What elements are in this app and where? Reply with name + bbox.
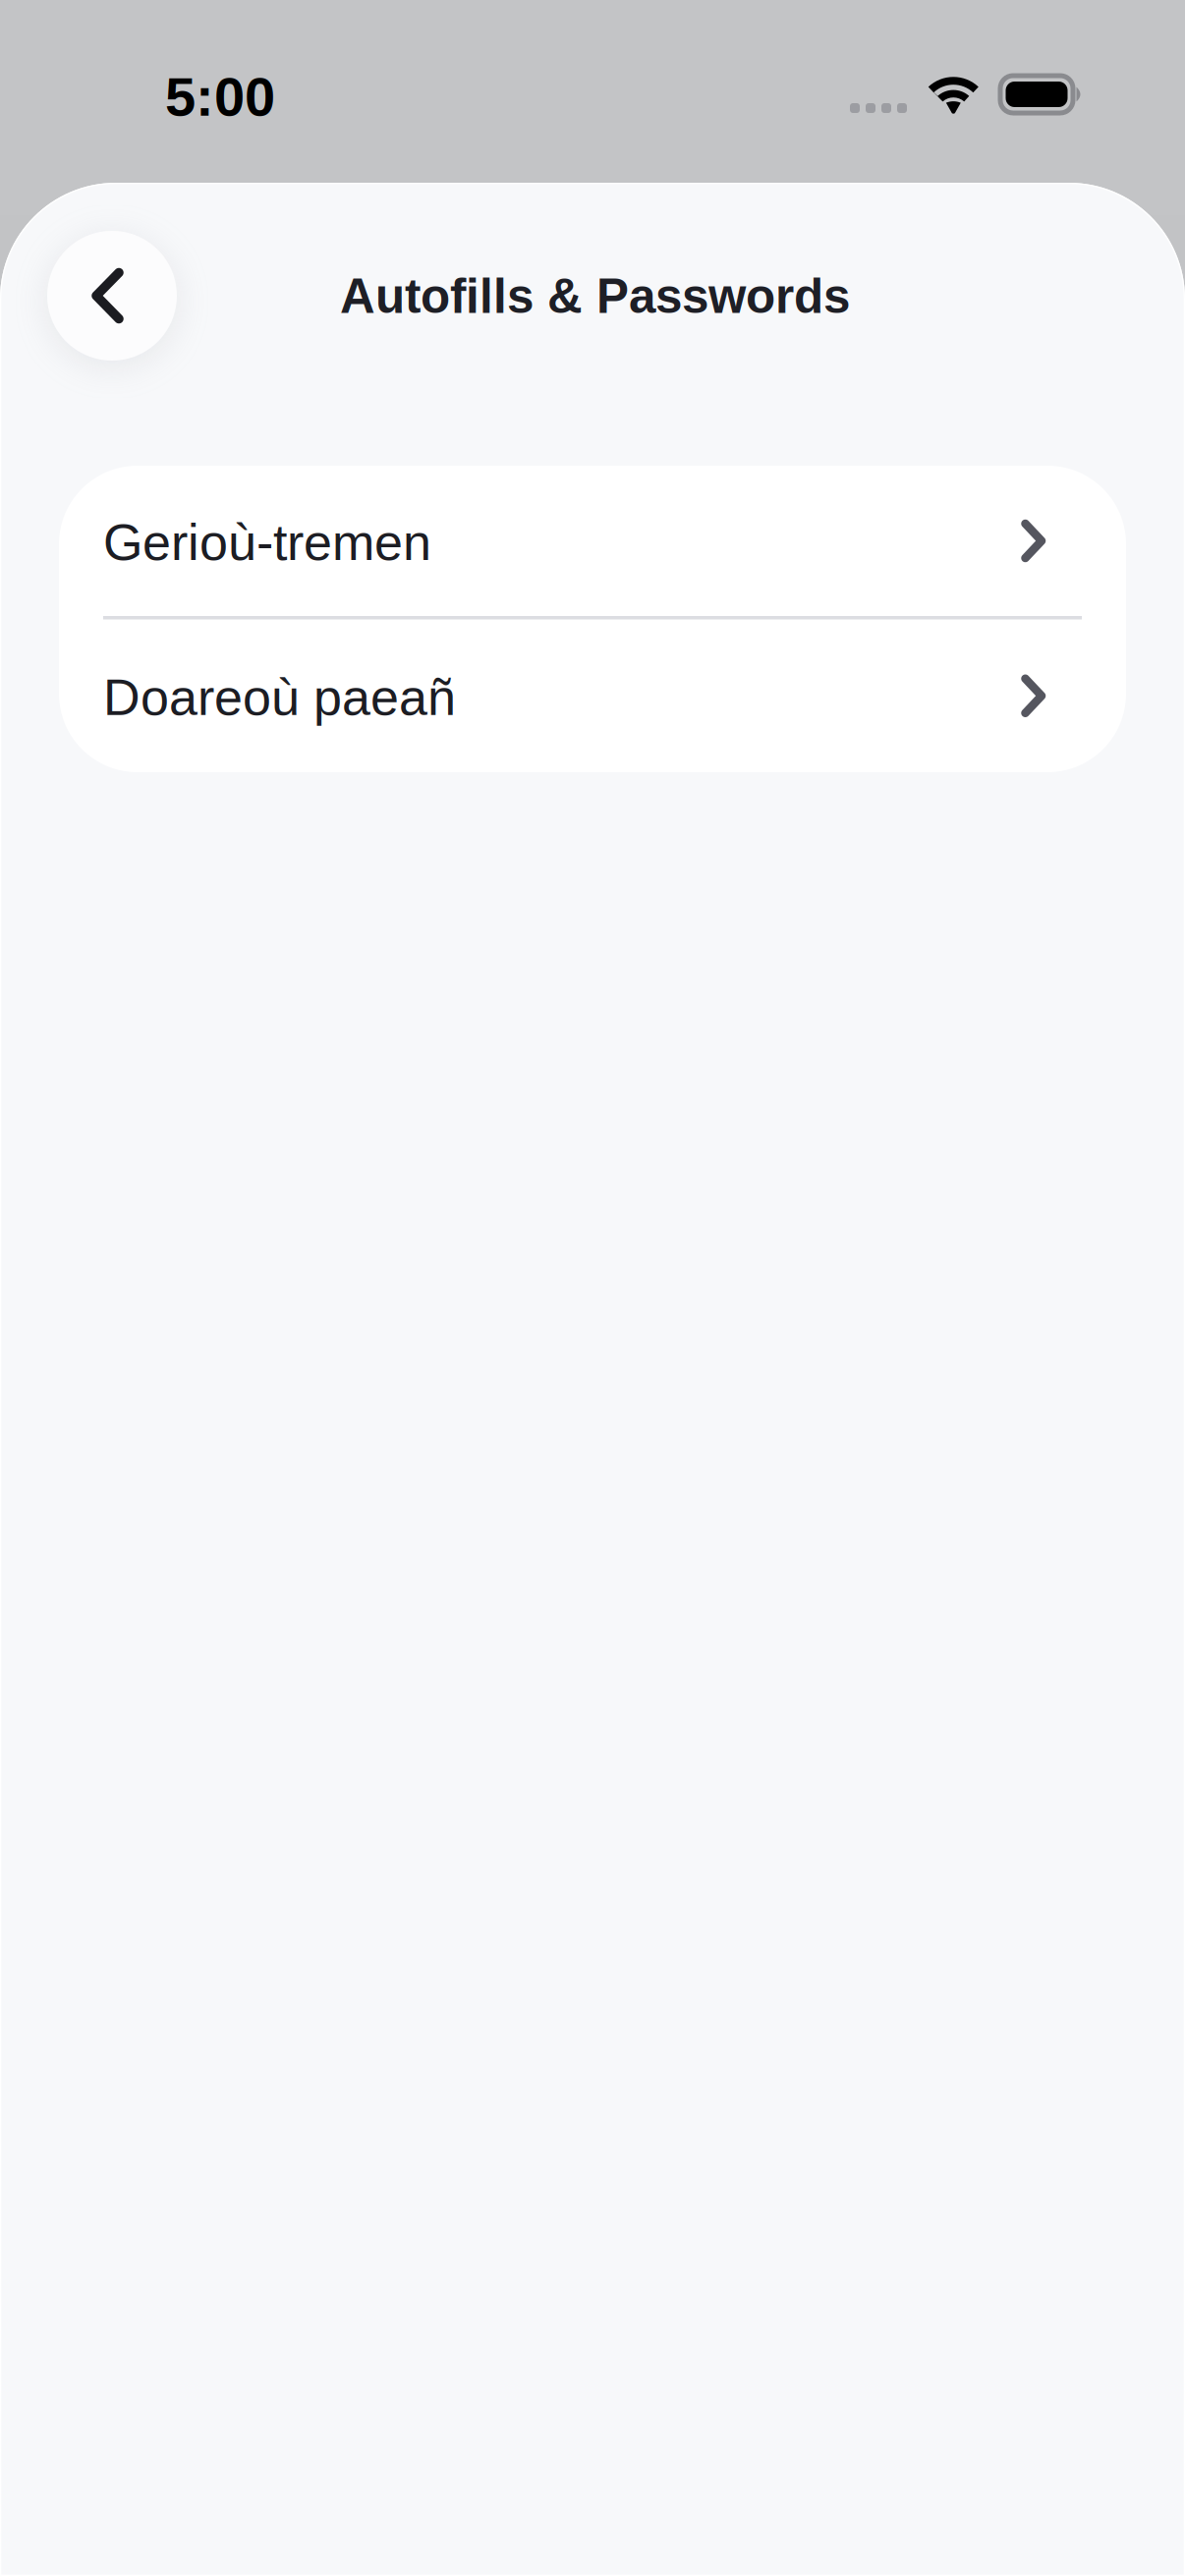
button[interactable]: Gerioù-tremen [59, 466, 1126, 616]
button[interactable]: Doareoù paeañ [59, 619, 1126, 772]
staticText: Doareoù paeañ [103, 669, 456, 726]
button[interactable]: Back [47, 231, 177, 361]
staticText: Autofills & Passwords [340, 269, 850, 323]
staticText: Gerioù-tremen [103, 514, 431, 571]
staticText: 5:00 [165, 66, 275, 127]
